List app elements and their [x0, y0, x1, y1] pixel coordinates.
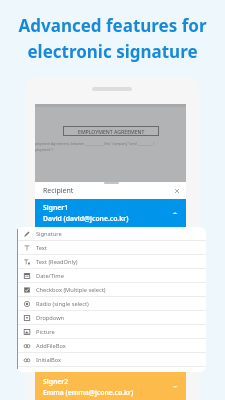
staticText: Emma (emma@jcone.co.kr): [43, 388, 134, 397]
staticText: David (david@jcone.co.kr): [43, 214, 129, 223]
button[interactable]: AddFileBox: [18, 339, 206, 353]
button[interactable]: Close: [172, 186, 182, 196]
button[interactable]: Text: [18, 241, 206, 255]
staticText: Checkbox (Multiple select): [36, 286, 106, 294]
staticText: Advanced features for: [18, 14, 207, 37]
button[interactable]: Checkbox (Multiple select): [18, 283, 206, 297]
button[interactable]: Picture: [18, 325, 206, 339]
staticText: ployment").: [35, 147, 54, 152]
staticText: Text: [36, 244, 47, 252]
staticText: Signature: [36, 230, 62, 238]
staticText: Text (ReadOnly): [36, 258, 78, 266]
staticText: ployment Agreement, between ____________…: [35, 141, 155, 146]
button[interactable]: Signer2: [35, 372, 186, 400]
button[interactable]: Signature: [18, 227, 206, 241]
staticText: Signer1: [43, 203, 69, 212]
button[interactable]: InitialBox: [18, 353, 206, 367]
button[interactable]: Text (ReadOnly): [18, 255, 206, 269]
staticText: Radio (single select): [36, 300, 89, 308]
button[interactable]: Radio (single select): [18, 297, 206, 311]
staticText: EMPLOYMENT AGREEMENT: [78, 128, 145, 135]
staticText: AddFileBox: [36, 342, 66, 350]
staticText: Dropdown: [36, 314, 65, 322]
button[interactable]: Dropdown: [18, 311, 206, 325]
staticText: InitialBox: [36, 356, 62, 364]
staticText: Recipient: [43, 186, 74, 196]
button[interactable]: Date/Time: [18, 269, 206, 283]
staticText: electronic signature: [27, 40, 198, 63]
staticText: Signer2: [43, 377, 69, 386]
staticText: Date/Time: [36, 272, 64, 280]
button[interactable]: Signer1: [35, 199, 186, 227]
staticText: Picture: [36, 328, 55, 336]
